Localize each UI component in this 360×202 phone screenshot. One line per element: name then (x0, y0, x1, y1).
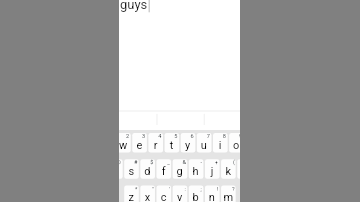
button[interactable] (0, 0, 360, 202)
